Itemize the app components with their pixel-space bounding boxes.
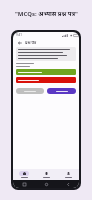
button[interactable]: Back <box>16 39 23 46</box>
button[interactable] <box>16 88 44 94</box>
button[interactable]: Home <box>13 169 35 180</box>
button[interactable] <box>47 88 76 94</box>
button[interactable] <box>16 69 76 75</box>
button[interactable] <box>16 77 76 83</box>
staticText: प्रश्न पत्र <box>25 40 37 45</box>
button[interactable]: Tests <box>35 169 57 180</box>
button[interactable]: Profile <box>57 169 79 180</box>
button[interactable] <box>16 47 76 61</box>
staticText: 9:41 <box>16 33 22 37</box>
staticText: "MCQs: अभ्यास प्रश्न पत्र" <box>15 10 78 18</box>
